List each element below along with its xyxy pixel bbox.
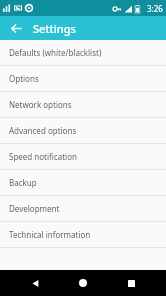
staticText: Technical information xyxy=(9,229,91,240)
staticText: Development xyxy=(9,203,60,214)
button[interactable]: Recent apps xyxy=(118,270,144,296)
staticText: Options xyxy=(9,73,39,84)
staticText: Speed notification xyxy=(9,151,77,162)
staticText: Advanced options xyxy=(9,125,77,136)
button[interactable]: Home xyxy=(70,270,96,296)
staticText: Backup xyxy=(9,177,37,188)
staticText: 3:26 xyxy=(147,3,163,14)
button[interactable]: Backup xyxy=(0,170,166,196)
button[interactable]: Speed notification xyxy=(0,144,166,170)
button[interactable]: Advanced options xyxy=(0,118,166,144)
button[interactable]: Defaults (white/blacklist) xyxy=(0,40,166,66)
button[interactable]: Back xyxy=(22,270,48,296)
button[interactable]: Development xyxy=(0,196,166,222)
staticText: Settings xyxy=(33,21,76,36)
button[interactable]: Navigate up xyxy=(5,17,27,39)
button[interactable]: Technical information xyxy=(0,222,166,248)
staticText: Defaults (white/blacklist) xyxy=(9,47,102,58)
staticText: Network options xyxy=(9,99,72,110)
button[interactable]: Network options xyxy=(0,92,166,118)
button[interactable]: Options xyxy=(0,66,166,92)
